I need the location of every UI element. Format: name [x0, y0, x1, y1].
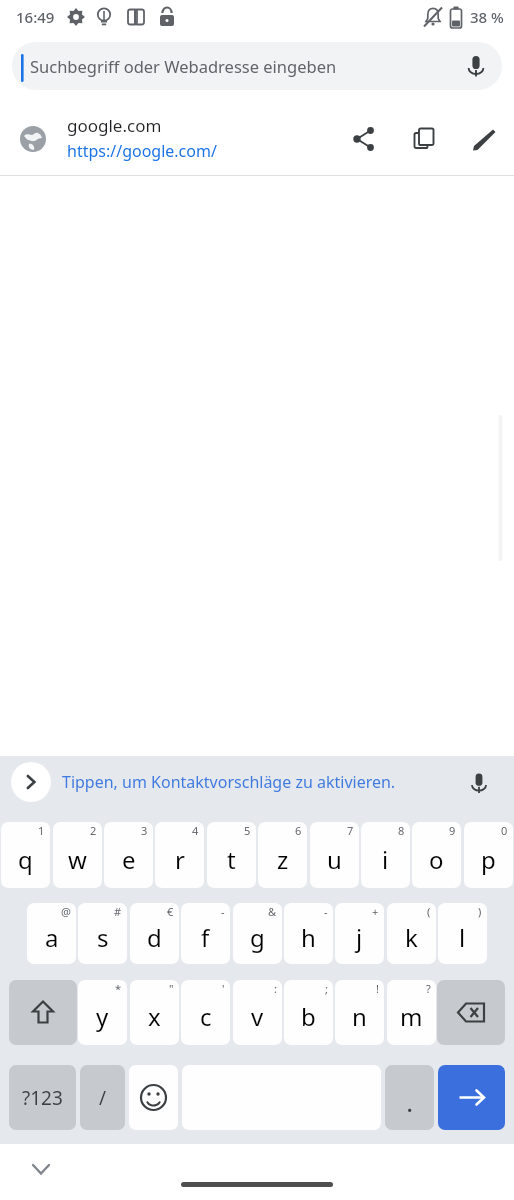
staticText: !: [376, 981, 379, 996]
staticText: b: [301, 1000, 316, 1033]
button[interactable]: Eingabetaste: [438, 1065, 505, 1130]
button[interactable]: 6: [258, 822, 307, 888]
button[interactable]: 7: [310, 822, 359, 888]
staticText: e: [122, 843, 136, 876]
button[interactable]: Tippen, um Kontaktvorschläge zu aktivier…: [62, 763, 452, 801]
button[interactable]: 4: [155, 822, 204, 888]
staticText: ?: [426, 981, 431, 996]
button[interactable]: (: [387, 903, 436, 964]
button[interactable]: €: [130, 903, 179, 964]
button[interactable]: 3: [104, 822, 153, 888]
staticText: (: [427, 904, 431, 919]
staticText: y: [96, 1000, 109, 1033]
button[interactable]: :: [233, 980, 282, 1045]
staticText: i: [382, 843, 389, 876]
staticText: Tippen, um Kontaktvorschläge zu aktivier…: [62, 771, 396, 793]
button[interactable]: Punkt: [385, 1065, 434, 1130]
staticText: 38 %: [470, 7, 504, 27]
staticText: u: [327, 843, 342, 876]
staticText: 7: [347, 823, 354, 838]
staticText: 5: [244, 823, 251, 838]
staticText: d: [147, 921, 162, 954]
staticText: c: [200, 1000, 212, 1033]
staticText: @: [61, 904, 71, 919]
button[interactable]: ": [130, 980, 179, 1045]
button[interactable]: google.com: [0, 100, 514, 175]
button[interactable]: -: [284, 903, 333, 964]
staticText: +: [372, 904, 379, 919]
button[interactable]: Suchbegriff oder Webadresse eingeben: [12, 42, 502, 90]
button[interactable]: Tastatur ausblenden: [20, 1148, 62, 1190]
button[interactable]: 8: [361, 822, 410, 888]
button[interactable]: ): [438, 903, 487, 964]
button[interactable]: 5: [207, 822, 256, 888]
staticText: #: [114, 904, 122, 919]
button[interactable]: Startbildschirm: [181, 1182, 333, 1187]
staticText: o: [429, 843, 444, 876]
staticText: https://google.com/: [67, 140, 217, 162]
button[interactable]: 2: [53, 822, 102, 888]
staticText: ': [222, 981, 225, 996]
staticText: s: [97, 921, 109, 954]
staticText: k: [405, 921, 418, 954]
staticText: a: [45, 921, 59, 954]
button[interactable]: *: [78, 980, 127, 1045]
staticText: Suchbegriff oder Webadresse eingeben: [30, 55, 337, 77]
staticText: -: [324, 904, 328, 919]
staticText: r: [175, 843, 185, 876]
staticText: z: [277, 843, 289, 876]
staticText: 3: [141, 823, 148, 838]
staticText: v: [251, 1000, 264, 1033]
button[interactable]: 0: [464, 822, 513, 888]
staticText: g: [250, 921, 265, 954]
staticText: ?123: [22, 1085, 63, 1111]
staticText: :: [274, 981, 277, 996]
staticText: 16:49: [16, 7, 55, 27]
button[interactable]: !: [335, 980, 384, 1045]
staticText: 4: [192, 823, 199, 838]
button[interactable]: ': [181, 980, 230, 1045]
staticText: j: [356, 921, 363, 954]
staticText: f: [201, 921, 210, 954]
staticText: n: [352, 1000, 367, 1033]
staticText: l: [459, 921, 466, 954]
staticText: h: [301, 921, 316, 954]
button[interactable]: Weitere Vorschläge: [11, 762, 51, 802]
staticText: p: [481, 843, 496, 876]
staticText: ": [169, 981, 174, 996]
staticText: &: [268, 904, 277, 919]
button[interactable]: Emoji: [129, 1065, 178, 1130]
staticText: q: [18, 843, 33, 876]
button[interactable]: ?: [387, 980, 436, 1045]
button[interactable]: Umschalttaste: [9, 980, 77, 1045]
button[interactable]: -: [181, 903, 230, 964]
button[interactable]: &: [233, 903, 282, 964]
staticText: t: [227, 843, 236, 876]
button[interactable]: Spracheingabe: [460, 764, 498, 802]
staticText: m: [400, 1000, 423, 1033]
staticText: -: [221, 904, 225, 919]
staticText: /: [99, 1085, 107, 1111]
button[interactable]: @: [27, 903, 76, 964]
button[interactable]: #: [78, 903, 127, 964]
button[interactable]: 1: [1, 822, 50, 888]
button[interactable]: Löschen: [437, 980, 505, 1045]
staticText: 1: [38, 823, 45, 838]
staticText: x: [148, 1000, 161, 1033]
staticText: ;: [325, 981, 328, 996]
button[interactable]: Symbole: [9, 1065, 76, 1130]
staticText: 0: [501, 823, 508, 838]
staticText: 6: [295, 823, 302, 838]
staticText: 2: [90, 823, 97, 838]
staticText: w: [68, 843, 87, 876]
staticText: *: [115, 981, 122, 996]
staticText: .: [407, 1092, 413, 1118]
button[interactable]: ;: [284, 980, 333, 1045]
button[interactable]: Schrägstrich: [80, 1065, 125, 1130]
staticText: google.com: [67, 114, 162, 137]
button[interactable]: +: [335, 903, 384, 964]
button[interactable]: 9: [412, 822, 461, 888]
staticText: ): [478, 904, 482, 919]
staticText: €: [167, 904, 174, 919]
